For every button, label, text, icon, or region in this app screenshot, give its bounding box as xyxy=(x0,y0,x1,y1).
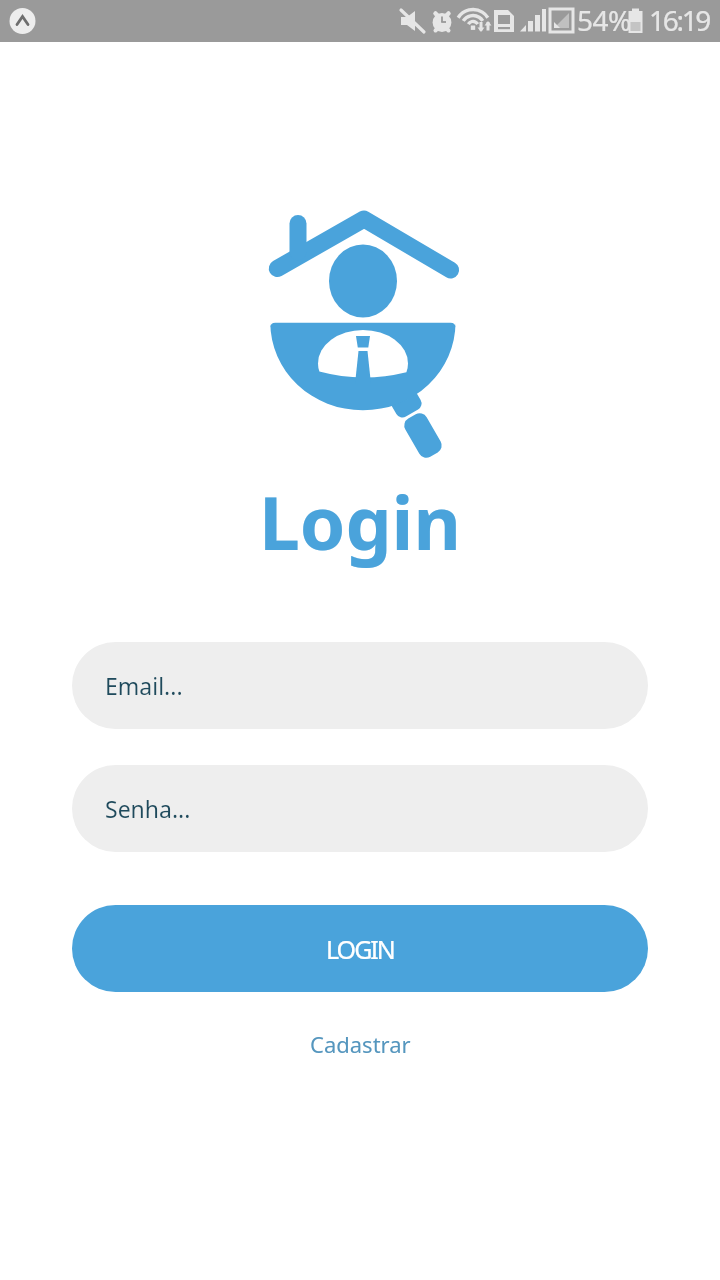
button[interactable]: LOGIN xyxy=(72,905,648,992)
button[interactable]: Senha... xyxy=(72,765,648,852)
staticText: Login xyxy=(259,472,461,571)
staticText: LOGIN xyxy=(326,932,394,966)
staticText: 16:19 xyxy=(649,1,710,39)
staticText: Cadastrar xyxy=(310,1029,411,1059)
staticText: 54% xyxy=(577,1,631,39)
button[interactable]: App notification xyxy=(9,8,35,34)
staticText: Senha... xyxy=(105,793,191,824)
staticText: Email... xyxy=(105,670,183,701)
button[interactable]: Email... xyxy=(72,642,648,729)
button[interactable]: Cadastrar xyxy=(296,1020,425,1068)
